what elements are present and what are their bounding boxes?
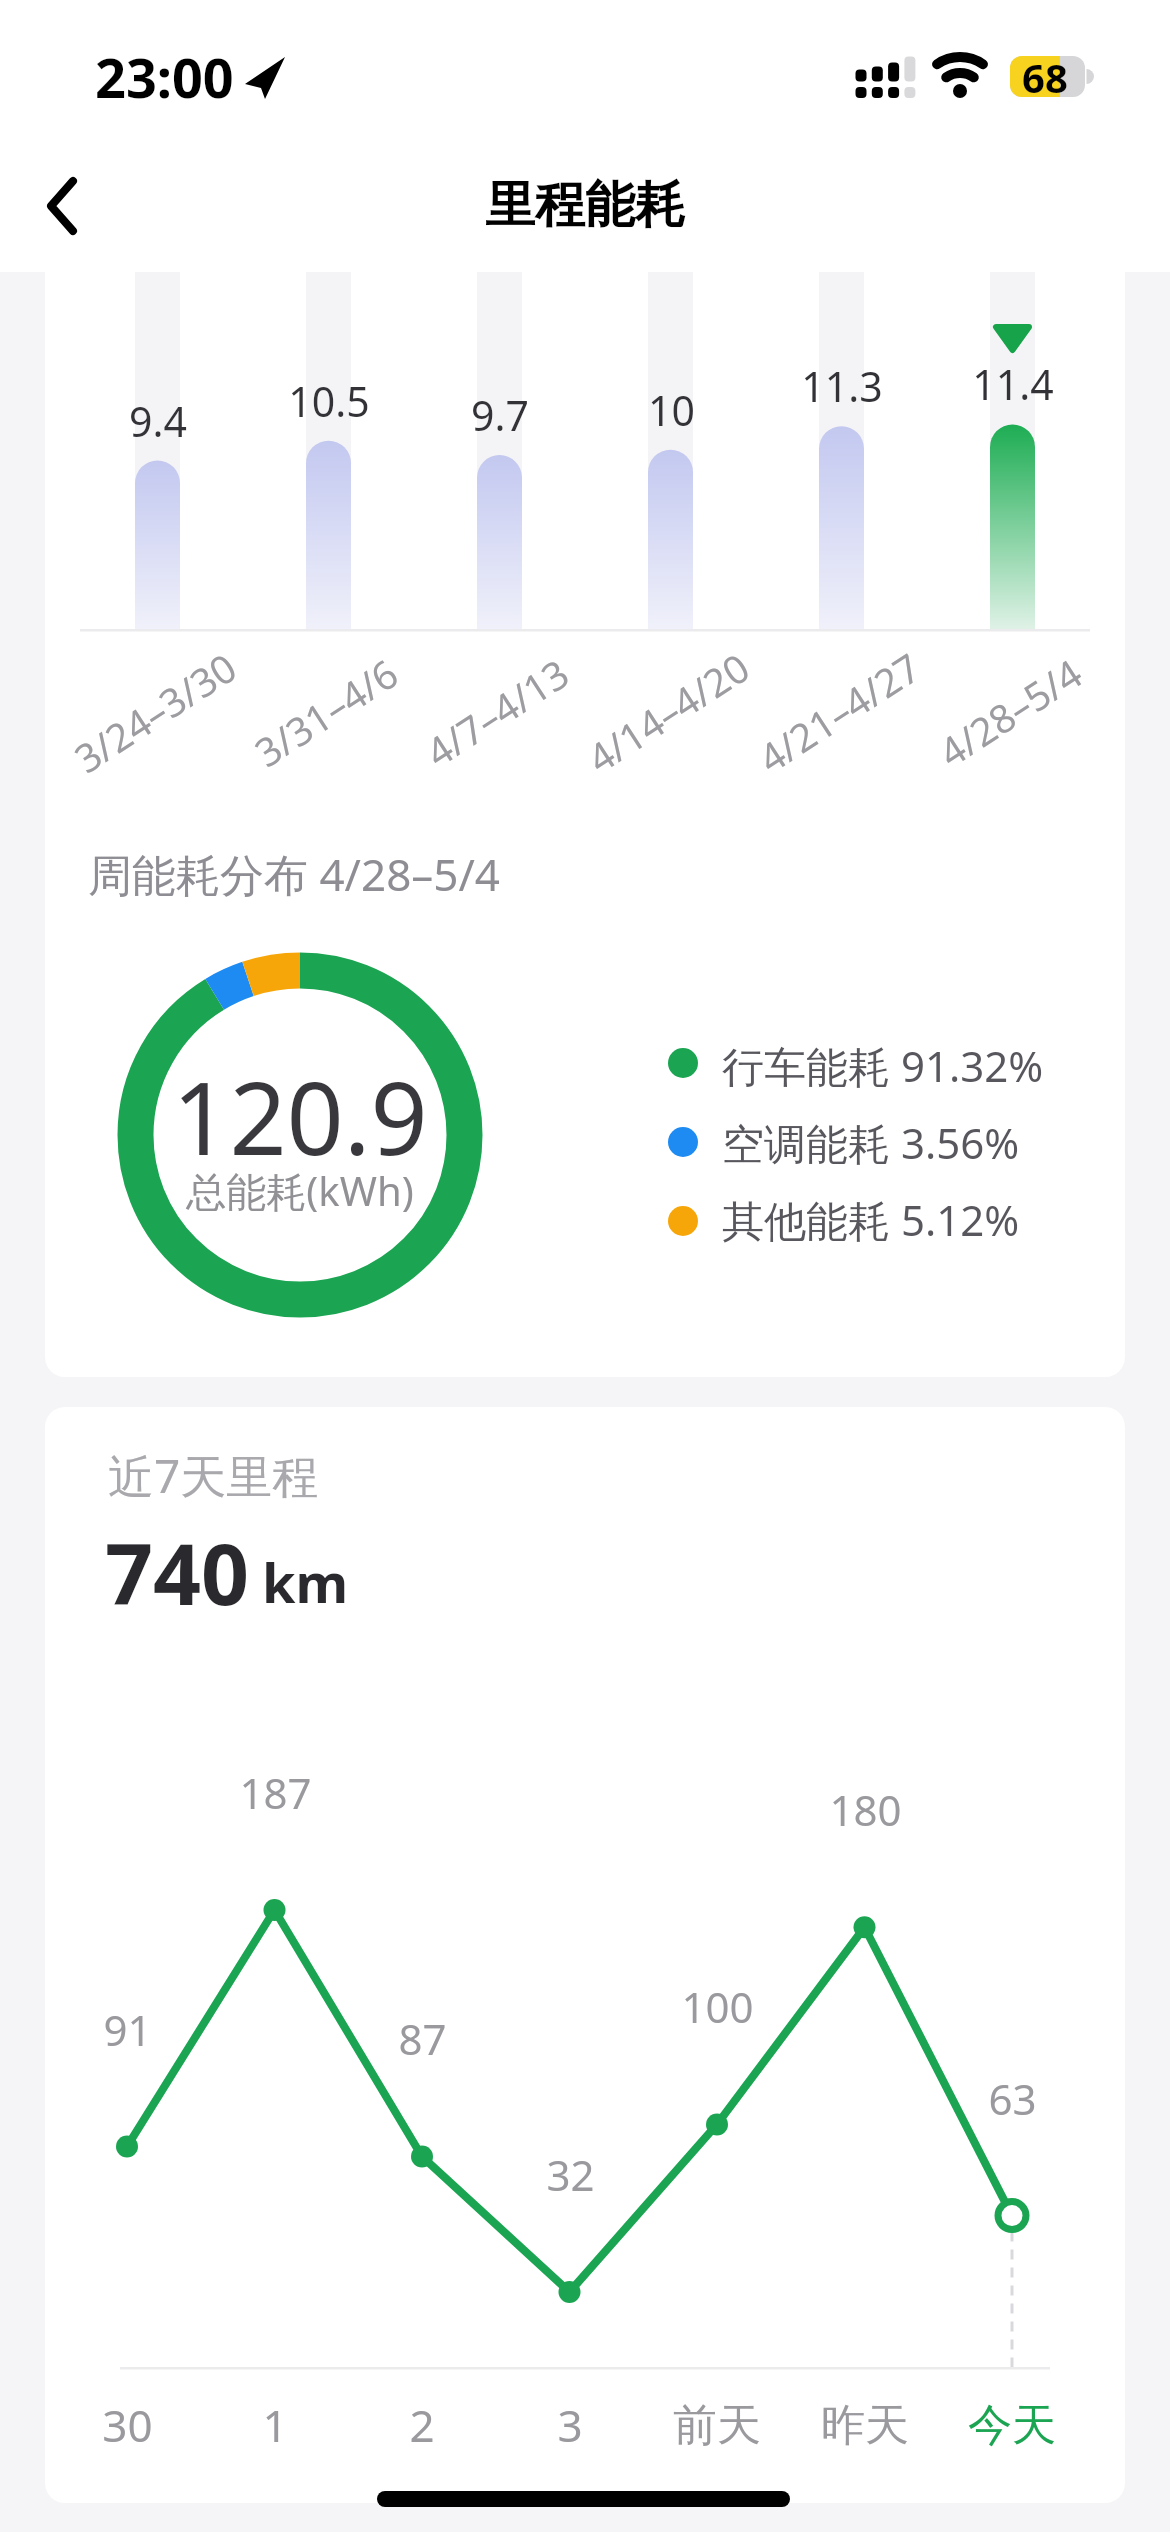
staticText: 昨天	[821, 2398, 909, 2453]
staticText: 9.4	[129, 393, 187, 449]
staticText: 120.9	[172, 1048, 428, 1168]
staticText: 63	[988, 2070, 1037, 2127]
staticText: 68	[1022, 50, 1068, 104]
button[interactable]: 30	[0, 2365, 477, 2485]
staticText: 100	[681, 1978, 754, 2035]
staticText: 里程能耗	[485, 174, 685, 237]
button[interactable]: 前天	[367, 2365, 1067, 2485]
button[interactable]: 1	[0, 2365, 625, 2485]
button[interactable]: 2	[72, 2365, 772, 2485]
staticText: 30	[102, 2395, 153, 2455]
staticText: 740	[105, 1515, 250, 1629]
button[interactable]	[135, 272, 181, 630]
staticText: 23:00	[95, 40, 234, 114]
staticText: 4/28–5/4	[928, 646, 1092, 778]
staticText: 今天	[968, 2398, 1056, 2453]
staticText: 11.4	[972, 356, 1054, 412]
staticText: 空调能耗 3.56%	[722, 1114, 1020, 1171]
button[interactable]	[990, 272, 1036, 630]
staticText: 3/24–3/30	[63, 640, 246, 784]
staticText: 前天	[673, 2398, 761, 2453]
button[interactable]	[648, 272, 694, 630]
staticText: 4/14–4/20	[576, 640, 759, 784]
staticText: 近7天里程	[108, 1444, 319, 1507]
button[interactable]: 3	[220, 2365, 920, 2485]
button[interactable]	[819, 272, 865, 630]
staticText: 3	[557, 2395, 583, 2455]
staticText: 87	[398, 2010, 447, 2067]
staticText: 4/7–4/13	[415, 646, 579, 778]
staticText: 周能耗分布 4/28–5/4	[88, 844, 501, 904]
button[interactable]: 昨天	[515, 2365, 1170, 2485]
staticText: 总能耗(kWh)	[186, 1163, 414, 1218]
staticText: 行车能耗 91.32%	[722, 1037, 1044, 1094]
staticText: 187	[239, 1764, 312, 1821]
staticText: km	[262, 1545, 349, 1619]
staticText: 10	[648, 382, 695, 438]
staticText: 32	[546, 2146, 595, 2203]
staticText: 180	[829, 1781, 902, 1838]
staticText: 3/31–4/6	[244, 646, 408, 778]
staticText: 9.7	[471, 387, 529, 443]
button[interactable]	[306, 272, 352, 630]
button[interactable]	[477, 272, 523, 630]
staticText: 2	[409, 2395, 435, 2455]
button[interactable]: 今天	[662, 2365, 1170, 2485]
staticText: 11.3	[801, 358, 883, 414]
staticText: 10.5	[288, 373, 370, 429]
staticText: 1	[262, 2395, 288, 2455]
button[interactable]	[20, 160, 120, 260]
staticText: 91	[103, 2001, 152, 2058]
staticText: 其他能耗 5.12%	[722, 1191, 1020, 1248]
staticText: 4/21–4/27	[747, 640, 930, 784]
